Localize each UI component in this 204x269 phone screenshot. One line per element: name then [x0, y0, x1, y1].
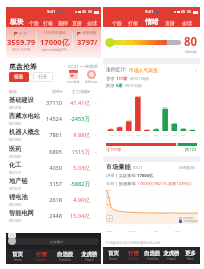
button[interactable]: 西藏水电站	[6, 111, 101, 127]
staticText: 801344	[9, 218, 22, 223]
staticText: 09:30	[106, 229, 113, 232]
staticText: －	[90, 101, 98, 106]
staticText: －	[90, 133, 98, 138]
staticText: 10:30	[129, 229, 136, 232]
button[interactable]: 自选股	[53, 251, 77, 262]
button[interactable]: 医药	[6, 144, 101, 160]
staticText: (昨日118家)	[130, 76, 150, 81]
button[interactable]: 自选股	[143, 250, 162, 261]
button[interactable]: 锂电池	[6, 192, 101, 208]
staticText: 4G	[82, 10, 87, 14]
staticText: 3559.79	[7, 37, 36, 47]
staticText: 25.31 0.72%	[12, 48, 31, 52]
staticText: 首页	[12, 251, 23, 258]
button[interactable]: 涨跌统计:	[106, 64, 197, 75]
button[interactable]: 今日复盘	[67, 70, 80, 84]
button[interactable]: 板块	[9, 16, 25, 27]
staticText: 801256	[9, 202, 22, 207]
staticText: Home	[109, 257, 117, 261]
staticText: ↗	[108, 217, 112, 221]
staticText: 85	[116, 124, 125, 127]
staticText: 1	[196, 229, 198, 232]
staticText: 医药	[9, 145, 22, 153]
staticText: 全球	[182, 20, 192, 26]
button[interactable]: 化工	[6, 160, 101, 176]
staticText: 28	[143, 127, 152, 130]
staticText: 9:41	[47, 9, 56, 15]
staticText: 37110	[41, 99, 62, 107]
button[interactable]: 全球	[86, 19, 98, 27]
staticText: 14	[188, 127, 197, 130]
staticText: 沪 深	[19, 31, 28, 36]
staticText: 地产链	[9, 177, 28, 185]
button[interactable]: 情绪	[144, 16, 160, 27]
button[interactable]: 龙虎榜	[162, 250, 181, 261]
staticText: 龙虎榜	[163, 250, 180, 257]
staticText: <-7%	[106, 133, 116, 136]
staticText: 801112	[9, 170, 22, 175]
button[interactable]: Play	[8, 237, 16, 245]
staticText: Markets	[128, 257, 139, 261]
staticText: 17000亿(缩21%,减量1289亿)	[137, 181, 192, 187]
staticText: 涨停	[106, 76, 115, 81]
staticText: 今日预测量能	[183, 220, 198, 223]
staticText: 681	[161, 105, 170, 108]
staticText: 80	[184, 34, 198, 50]
staticText: 涨797家	[106, 147, 122, 153]
staticText: 41.41亿	[62, 99, 90, 107]
staticText: 抢筹日历	[85, 80, 98, 84]
staticText: 9.88亿	[62, 131, 90, 139]
staticText: 15.04亿	[62, 212, 90, 220]
button[interactable]: 智能电网	[6, 208, 101, 224]
button[interactable]: 行情	[123, 250, 143, 261]
button[interactable]: Expand chart	[106, 215, 113, 222]
button[interactable]: 打板	[127, 19, 139, 27]
staticText: 11:30	[151, 229, 158, 232]
button[interactable]: 个股	[111, 19, 123, 27]
button[interactable]: 基础建设	[6, 95, 101, 111]
staticText: 07:21	[133, 165, 143, 170]
staticText: 6895	[41, 148, 62, 156]
staticText: －	[90, 150, 98, 155]
staticText: 38	[179, 126, 188, 129]
button[interactable]: 更多	[181, 250, 200, 261]
staticText: 热度▾	[41, 89, 62, 94]
staticText: 自选股	[144, 250, 161, 257]
button[interactable]: 首页	[103, 250, 123, 261]
staticText: 情绪指数	[185, 50, 197, 54]
staticText: -7~-5	[116, 133, 125, 136]
staticText: 沪深两市量能	[44, 31, 66, 36]
staticText: 个股	[112, 20, 122, 26]
button[interactable]: 规律	[57, 19, 69, 27]
button[interactable]: 全球	[181, 19, 193, 27]
staticText: 板块	[9, 89, 41, 94]
staticText: －	[90, 198, 98, 203]
button[interactable]: 行业	[33, 72, 53, 82]
button[interactable]: 行情	[29, 251, 53, 262]
staticText: 0~2	[152, 133, 161, 136]
button[interactable]: 龙虎榜	[77, 251, 101, 262]
staticText: 行情	[36, 251, 47, 258]
button[interactable]: 打板	[42, 19, 54, 27]
button[interactable]: 直播	[164, 19, 176, 27]
button[interactable]: 个股	[28, 19, 40, 27]
button[interactable]: 首页	[6, 251, 29, 262]
staticText: 40%	[106, 195, 111, 198]
staticText: 行情数据为当日可用来量能估化走势	[106, 241, 161, 245]
staticText: 个股	[29, 20, 39, 26]
staticText: 机器人概念	[9, 128, 40, 136]
staticText: 117家	[116, 76, 128, 82]
staticText: Markets	[36, 258, 47, 262]
staticText: 自选股	[57, 251, 74, 258]
button[interactable]: 机器人概念	[6, 127, 101, 143]
button[interactable]: 抢筹日历	[85, 70, 98, 84]
staticText: 17000亿	[40, 37, 70, 47]
staticText: 801278	[9, 105, 22, 110]
staticText: 14:00	[174, 229, 181, 232]
button[interactable]: 地产链	[6, 176, 101, 192]
staticText: 32	[106, 126, 116, 129]
button[interactable]: 直播	[71, 19, 83, 27]
staticText: 4.90亿	[62, 196, 90, 204]
button[interactable]: 精选	[9, 72, 29, 82]
